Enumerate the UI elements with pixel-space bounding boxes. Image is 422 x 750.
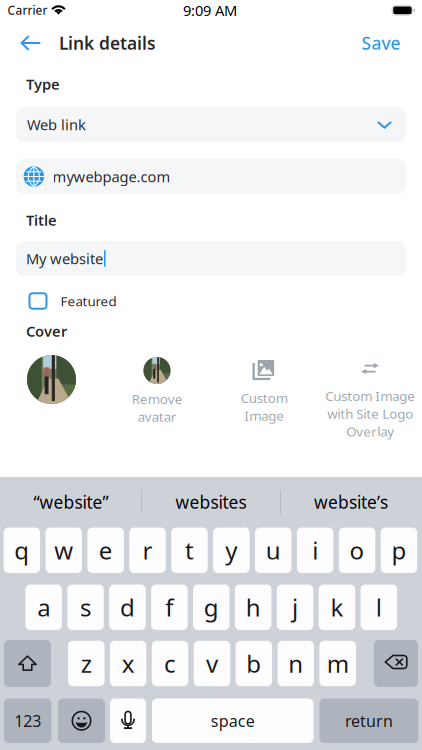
staticText: Title [26,210,57,230]
staticText: m [327,648,349,679]
button[interactable]: l [361,584,397,630]
button[interactable]: x [110,641,146,686]
staticText: b [246,648,261,679]
button[interactable]: r [129,527,166,573]
staticText: Cover [26,321,67,341]
staticText: website’s [314,490,388,513]
button[interactable]: n [277,641,314,686]
button[interactable]: g [193,584,229,630]
staticText: 123 [14,710,41,731]
staticText: k [330,591,343,623]
button[interactable]: j [277,584,313,630]
staticText: 9:09 AM [183,0,237,20]
staticText: Link details [59,31,156,54]
staticText: v [206,648,218,679]
staticText: n [288,648,303,679]
staticText: a [37,591,50,623]
staticText: q [14,534,29,566]
button[interactable]: o [339,527,375,573]
button[interactable]: website’s [281,477,421,527]
button[interactable]: v [194,641,230,686]
staticText: y [225,534,237,566]
staticText: return [345,710,393,731]
button[interactable]: Custom Image with Site Logo Overlay [316,363,422,443]
button[interactable]: u [255,527,291,573]
button[interactable]: websites [142,477,280,527]
staticText: i [312,534,318,566]
staticText: Carrier [7,2,47,18]
button[interactable]: Shift [4,640,51,687]
staticText: Save [361,31,400,54]
button[interactable]: s [67,584,104,630]
button[interactable]: space [152,698,313,743]
button[interactable]: t [171,527,208,573]
staticText: Remove avatar [131,390,182,425]
staticText: j [292,591,298,623]
button[interactable]: 123 [4,698,51,743]
staticText: Custom Image with Site Logo Overlay [325,387,415,440]
button[interactable]: h [235,584,271,630]
button[interactable]: Emoji [58,698,105,743]
staticText: w [54,534,73,566]
staticText: Featured [60,292,116,310]
staticText: r [142,534,152,566]
button[interactable]: d [109,584,146,630]
button[interactable]: e [87,527,124,573]
button[interactable]: m [319,641,356,686]
button[interactable]: q [4,527,40,573]
button[interactable]: Dictate [110,698,146,743]
button[interactable]: p [381,527,417,573]
staticText: Custom Image [240,389,287,424]
staticText: g [204,591,219,623]
staticText: h [246,591,261,623]
staticText: c [164,648,176,679]
button[interactable]: k [319,584,355,630]
button[interactable]: Delete [374,640,418,687]
staticText: t [185,534,194,566]
button[interactable]: Current cover [27,355,76,404]
staticText: “website” [33,490,108,513]
staticText: mywebpage.com [53,167,171,186]
button[interactable]: Save [352,31,410,55]
button[interactable]: f [151,584,188,630]
staticText: f [165,591,173,623]
staticText: My website [26,249,103,268]
staticText: p [391,534,406,566]
staticText: d [120,591,135,623]
staticText: Type [26,74,60,94]
staticText: z [81,648,92,679]
button[interactable]: Back [10,31,50,55]
button[interactable]: y [213,527,250,573]
staticText: u [266,534,281,566]
button[interactable]: Featured [20,288,180,314]
staticText: e [99,534,113,566]
staticText: space [211,710,255,731]
staticText: o [350,534,365,566]
button[interactable]: Web link [16,107,406,142]
button[interactable]: b [236,641,272,686]
button[interactable]: a [25,584,62,630]
button[interactable]: i [297,527,333,573]
staticText: l [376,591,382,623]
button[interactable]: w [45,527,82,573]
button[interactable]: z [68,641,104,686]
button[interactable]: Custom Image [214,359,314,419]
button[interactable]: “website” [1,477,141,527]
staticText: s [80,591,91,623]
staticText: Web link [27,115,86,134]
button[interactable]: return [319,698,418,743]
button[interactable]: c [152,641,188,686]
staticText: websites [175,490,246,513]
staticText: x [122,648,135,679]
button[interactable]: Remove avatar [107,357,207,417]
